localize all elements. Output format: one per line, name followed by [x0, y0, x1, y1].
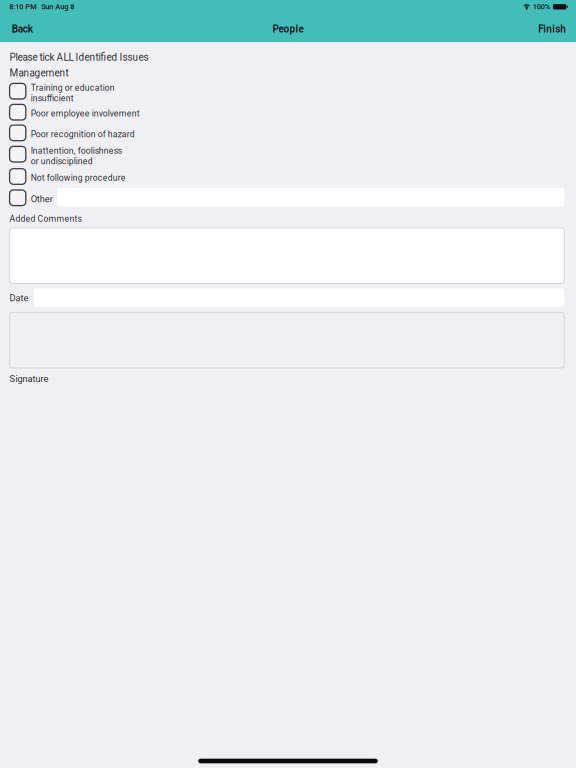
staticText: 100%	[533, 2, 550, 11]
staticText: Poor employee involvement	[31, 108, 140, 119]
staticText: Other	[31, 194, 53, 204]
button[interactable]: Poor employee involvement	[10, 104, 564, 124]
staticText: or undisciplined	[31, 156, 93, 166]
button[interactable]: Inattention, foolishness	[10, 146, 564, 166]
button[interactable]: Poor recognition of hazard	[10, 125, 564, 145]
button[interactable]: Signature, draw here	[10, 312, 564, 368]
button[interactable]: Other	[10, 190, 57, 210]
staticText: Inattention, foolishness	[31, 146, 122, 156]
staticText: Management	[10, 67, 69, 79]
staticText: insufficient	[31, 93, 74, 103]
staticText: People	[272, 23, 303, 35]
button[interactable]: Not following procedure	[10, 169, 564, 189]
staticText: Poor recognition of hazard	[31, 129, 135, 139]
button[interactable]: Finish	[521, 19, 576, 39]
staticText: 8:10 PM	[9, 2, 36, 11]
button[interactable]: Training or education	[10, 83, 564, 103]
staticText: Added Comments	[10, 214, 82, 224]
staticText: Back	[12, 23, 33, 35]
button[interactable]: Back	[0, 19, 57, 39]
staticText: Sun Aug 8	[41, 2, 74, 11]
staticText: Finish	[538, 23, 566, 35]
button[interactable]: Added Comments, text view	[10, 228, 564, 283]
staticText: Date	[10, 292, 29, 303]
staticText: Training or education	[31, 83, 115, 93]
staticText: Please tick ALL Identified Issues	[10, 51, 149, 63]
staticText: Not following procedure	[31, 173, 126, 183]
staticText: Signature	[10, 373, 49, 384]
